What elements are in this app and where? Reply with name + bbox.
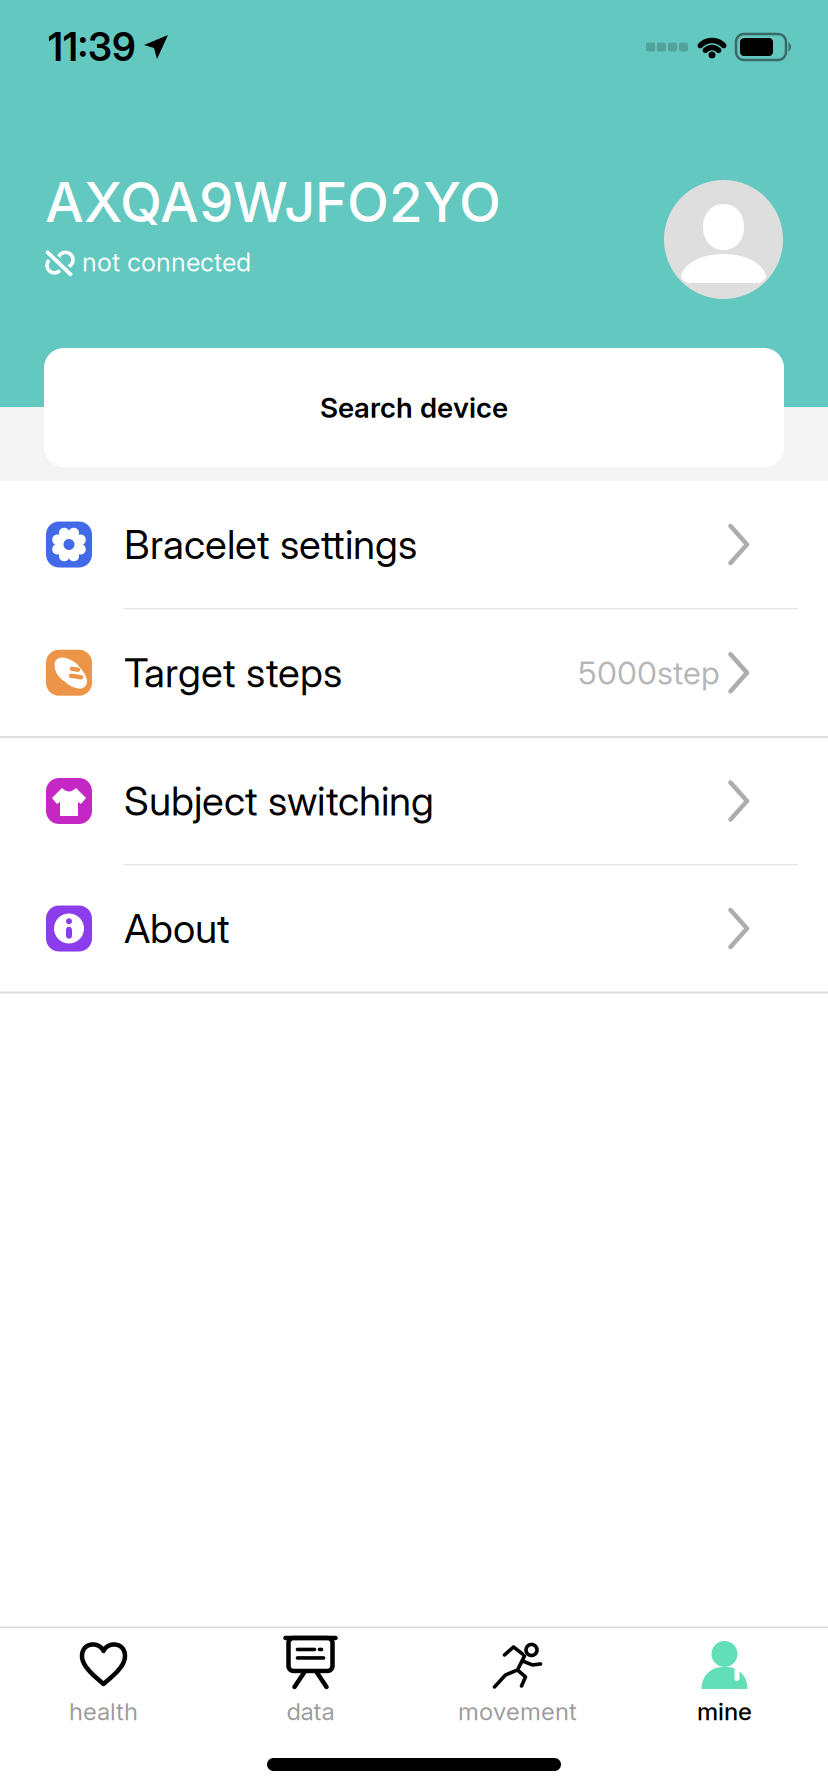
staticText: health — [69, 1697, 138, 1726]
button[interactable]: Profile — [664, 180, 783, 299]
staticText: data — [286, 1697, 334, 1726]
staticText: AXQA9WJFO2YO — [45, 169, 501, 235]
staticText: About — [124, 904, 230, 953]
button[interactable]: data — [207, 1641, 414, 1726]
staticText: Subject switching — [124, 777, 434, 825]
staticText: Search device — [320, 391, 508, 424]
staticText: Target steps — [124, 649, 342, 697]
button[interactable]: About — [0, 865, 828, 991]
staticText: 11:39 — [48, 24, 136, 70]
staticText: Bracelet settings — [124, 520, 417, 569]
button[interactable]: movement — [414, 1641, 621, 1726]
staticText: 5000step — [578, 653, 720, 692]
staticText: mine — [697, 1697, 752, 1726]
button[interactable]: Target steps — [0, 609, 828, 736]
button[interactable]: Search device — [44, 348, 784, 467]
staticText: movement — [458, 1697, 577, 1726]
button[interactable]: health — [0, 1641, 207, 1726]
staticText: not connected — [82, 247, 251, 278]
button[interactable]: mine — [621, 1641, 828, 1726]
button[interactable]: Subject switching — [0, 738, 828, 864]
button[interactable]: Bracelet settings — [0, 481, 828, 608]
